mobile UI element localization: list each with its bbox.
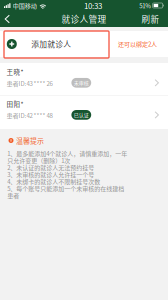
button[interactable]: 添加就诊人	[0, 31, 168, 57]
staticText: 就诊人管理	[61, 13, 106, 25]
button[interactable]: 返回	[0, 13, 18, 25]
staticText: 已认证	[74, 111, 89, 118]
staticText: 添加就诊人	[31, 38, 71, 50]
button[interactable]: 田阳*	[0, 96, 168, 129]
staticText: 刷新	[141, 13, 159, 25]
staticText: 51%	[139, 1, 151, 10]
staticText: 温馨提示	[16, 135, 44, 145]
button[interactable]: 刷新	[133, 11, 168, 27]
staticText: 2、未认证的就诊人无法预约挂号	[7, 163, 94, 172]
staticText: 未审核	[74, 79, 89, 86]
staticText: 1、最多能添加4个就诊人，请慎重添加，一年	[7, 149, 127, 158]
staticText: 3、未审核的就诊人允许挂一个号	[7, 170, 94, 179]
staticText: 患者ID:42 **** 48	[6, 111, 52, 120]
staticText: 4、未绑卡的就诊人不限制挂号次数	[7, 177, 100, 186]
staticText: 10:33	[84, 0, 102, 11]
staticText: 5、每个账号只能添加一个未审核的在线建档	[7, 184, 124, 193]
staticText: 患者	[7, 191, 19, 200]
button[interactable]: 王晓*	[0, 63, 168, 95]
staticText: 患者ID:43 **** 26	[6, 79, 52, 88]
staticText: 只允许变更（删除）1次	[7, 156, 70, 165]
staticText: 还可以绑定2人	[118, 40, 157, 48]
staticText: 王晓*	[6, 67, 23, 76]
staticText: 田阳*	[6, 99, 23, 109]
staticText: 中国移动	[13, 1, 37, 10]
